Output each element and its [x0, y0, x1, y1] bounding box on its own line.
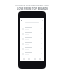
staticText: UNLOCK THE REWARDS YOU — [15, 3, 49, 6]
button[interactable] — [20, 41, 44, 46]
button[interactable] — [20, 36, 44, 41]
staticText: LOVE FROM TOP BRANDS — [17, 7, 48, 10]
button[interactable] — [20, 31, 44, 36]
button[interactable] — [20, 51, 44, 56]
button[interactable] — [20, 26, 44, 31]
button[interactable] — [20, 46, 44, 51]
